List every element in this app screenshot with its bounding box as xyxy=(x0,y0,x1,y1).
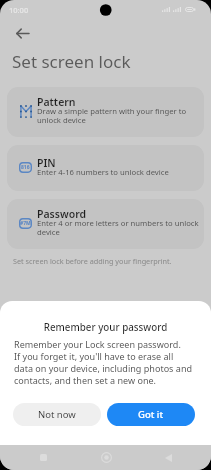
staticText: Remember your Lock screen password. xyxy=(14,338,181,350)
button[interactable]: Recent apps xyxy=(23,445,63,470)
staticText: 816 xyxy=(21,164,30,171)
staticText: Got it xyxy=(138,408,164,421)
staticText: Enter 4-16 numbers to unlock device xyxy=(37,167,169,177)
button[interactable]: Pattern xyxy=(7,87,204,137)
button[interactable]: #7M xyxy=(7,199,204,249)
staticText: #7M xyxy=(20,220,31,227)
staticText: Password xyxy=(37,207,87,221)
staticText: 10:00 xyxy=(9,5,29,15)
staticText: unlock device xyxy=(37,115,86,125)
staticText: Set screen lock xyxy=(12,50,131,73)
staticText: Set screen lock before adding your finge… xyxy=(13,256,172,266)
staticText: PIN xyxy=(37,156,56,170)
staticText: If you forget it, you'll have to erase a… xyxy=(14,350,174,362)
staticText: contacts, and then set a new one. xyxy=(14,374,156,386)
staticText: Pattern xyxy=(37,95,76,109)
button[interactable]: Back xyxy=(0,23,44,43)
staticText: data on your device, including photos an… xyxy=(14,362,193,374)
button[interactable]: Not now xyxy=(13,403,101,426)
staticText: Enter 4 or more letters or numbers to un… xyxy=(37,218,199,228)
staticText: Remember your password xyxy=(0,321,211,334)
staticText: Not now xyxy=(38,408,76,421)
button[interactable]: 816 xyxy=(7,145,204,191)
staticText: device xyxy=(37,227,60,237)
staticText: Draw a simple pattern with your finger t… xyxy=(37,106,187,116)
button[interactable]: Got it xyxy=(107,403,195,426)
button[interactable]: Home xyxy=(86,445,126,470)
